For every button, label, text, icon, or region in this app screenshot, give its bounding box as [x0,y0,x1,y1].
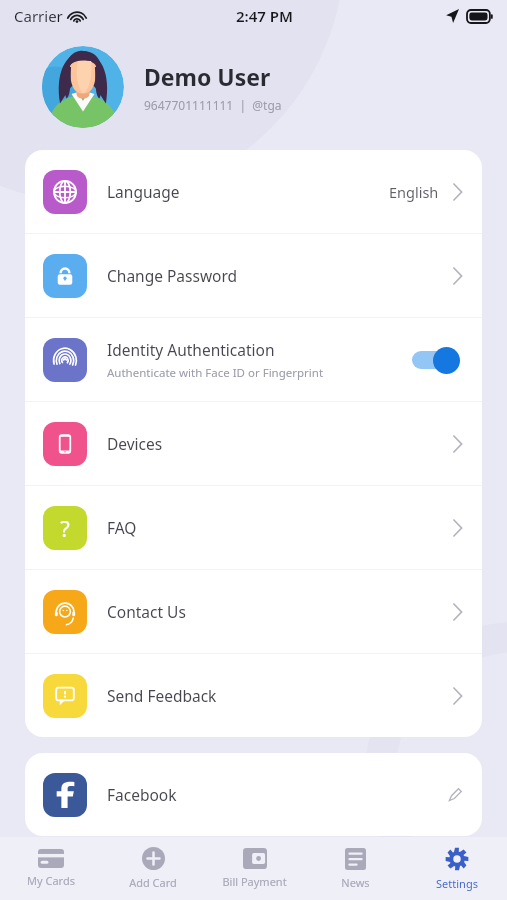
staticText: 2:47 PM [236,6,293,26]
button[interactable]: Bill Payment [204,837,305,900]
staticText: Devices [107,433,163,454]
button[interactable]: Contact Us [25,570,482,653]
staticText: Settings [436,876,478,891]
button[interactable]: Add Card [102,837,204,900]
staticText: Send Feedback [107,685,217,706]
button[interactable]: ? [25,486,482,569]
staticText: Identity Authentication [107,339,275,360]
staticText: Facebook [107,784,177,805]
staticText: Language [107,181,180,202]
staticText: Bill Payment [222,874,287,889]
button[interactable]: Send Feedback [25,654,482,737]
staticText: English [389,182,439,202]
staticText: Contact Us [107,601,186,622]
staticText: FAQ [107,517,137,538]
button[interactable]: News [305,837,406,900]
button[interactable]: Identity authentication toggle [410,345,462,375]
staticText: News [341,875,370,890]
button[interactable]: Language [25,150,482,233]
staticText: Carrier [14,6,63,26]
button[interactable]: Change Password [25,234,482,317]
staticText: My Cards [27,873,75,888]
staticText: Authenticate with Face ID or Fingerprint [107,365,324,381]
button[interactable]: Devices [25,402,482,485]
staticText: Add Card [129,875,177,890]
staticText: 9647701111111 | @tga [144,97,282,113]
button[interactable]: My Cards [0,837,102,900]
button[interactable]: Identity Authentication [25,318,482,401]
button[interactable]: Facebook [25,753,482,836]
staticText: Demo User [144,61,271,92]
staticText: ? [60,513,70,543]
staticText: Change Password [107,265,238,286]
button[interactable]: Settings [406,837,507,900]
